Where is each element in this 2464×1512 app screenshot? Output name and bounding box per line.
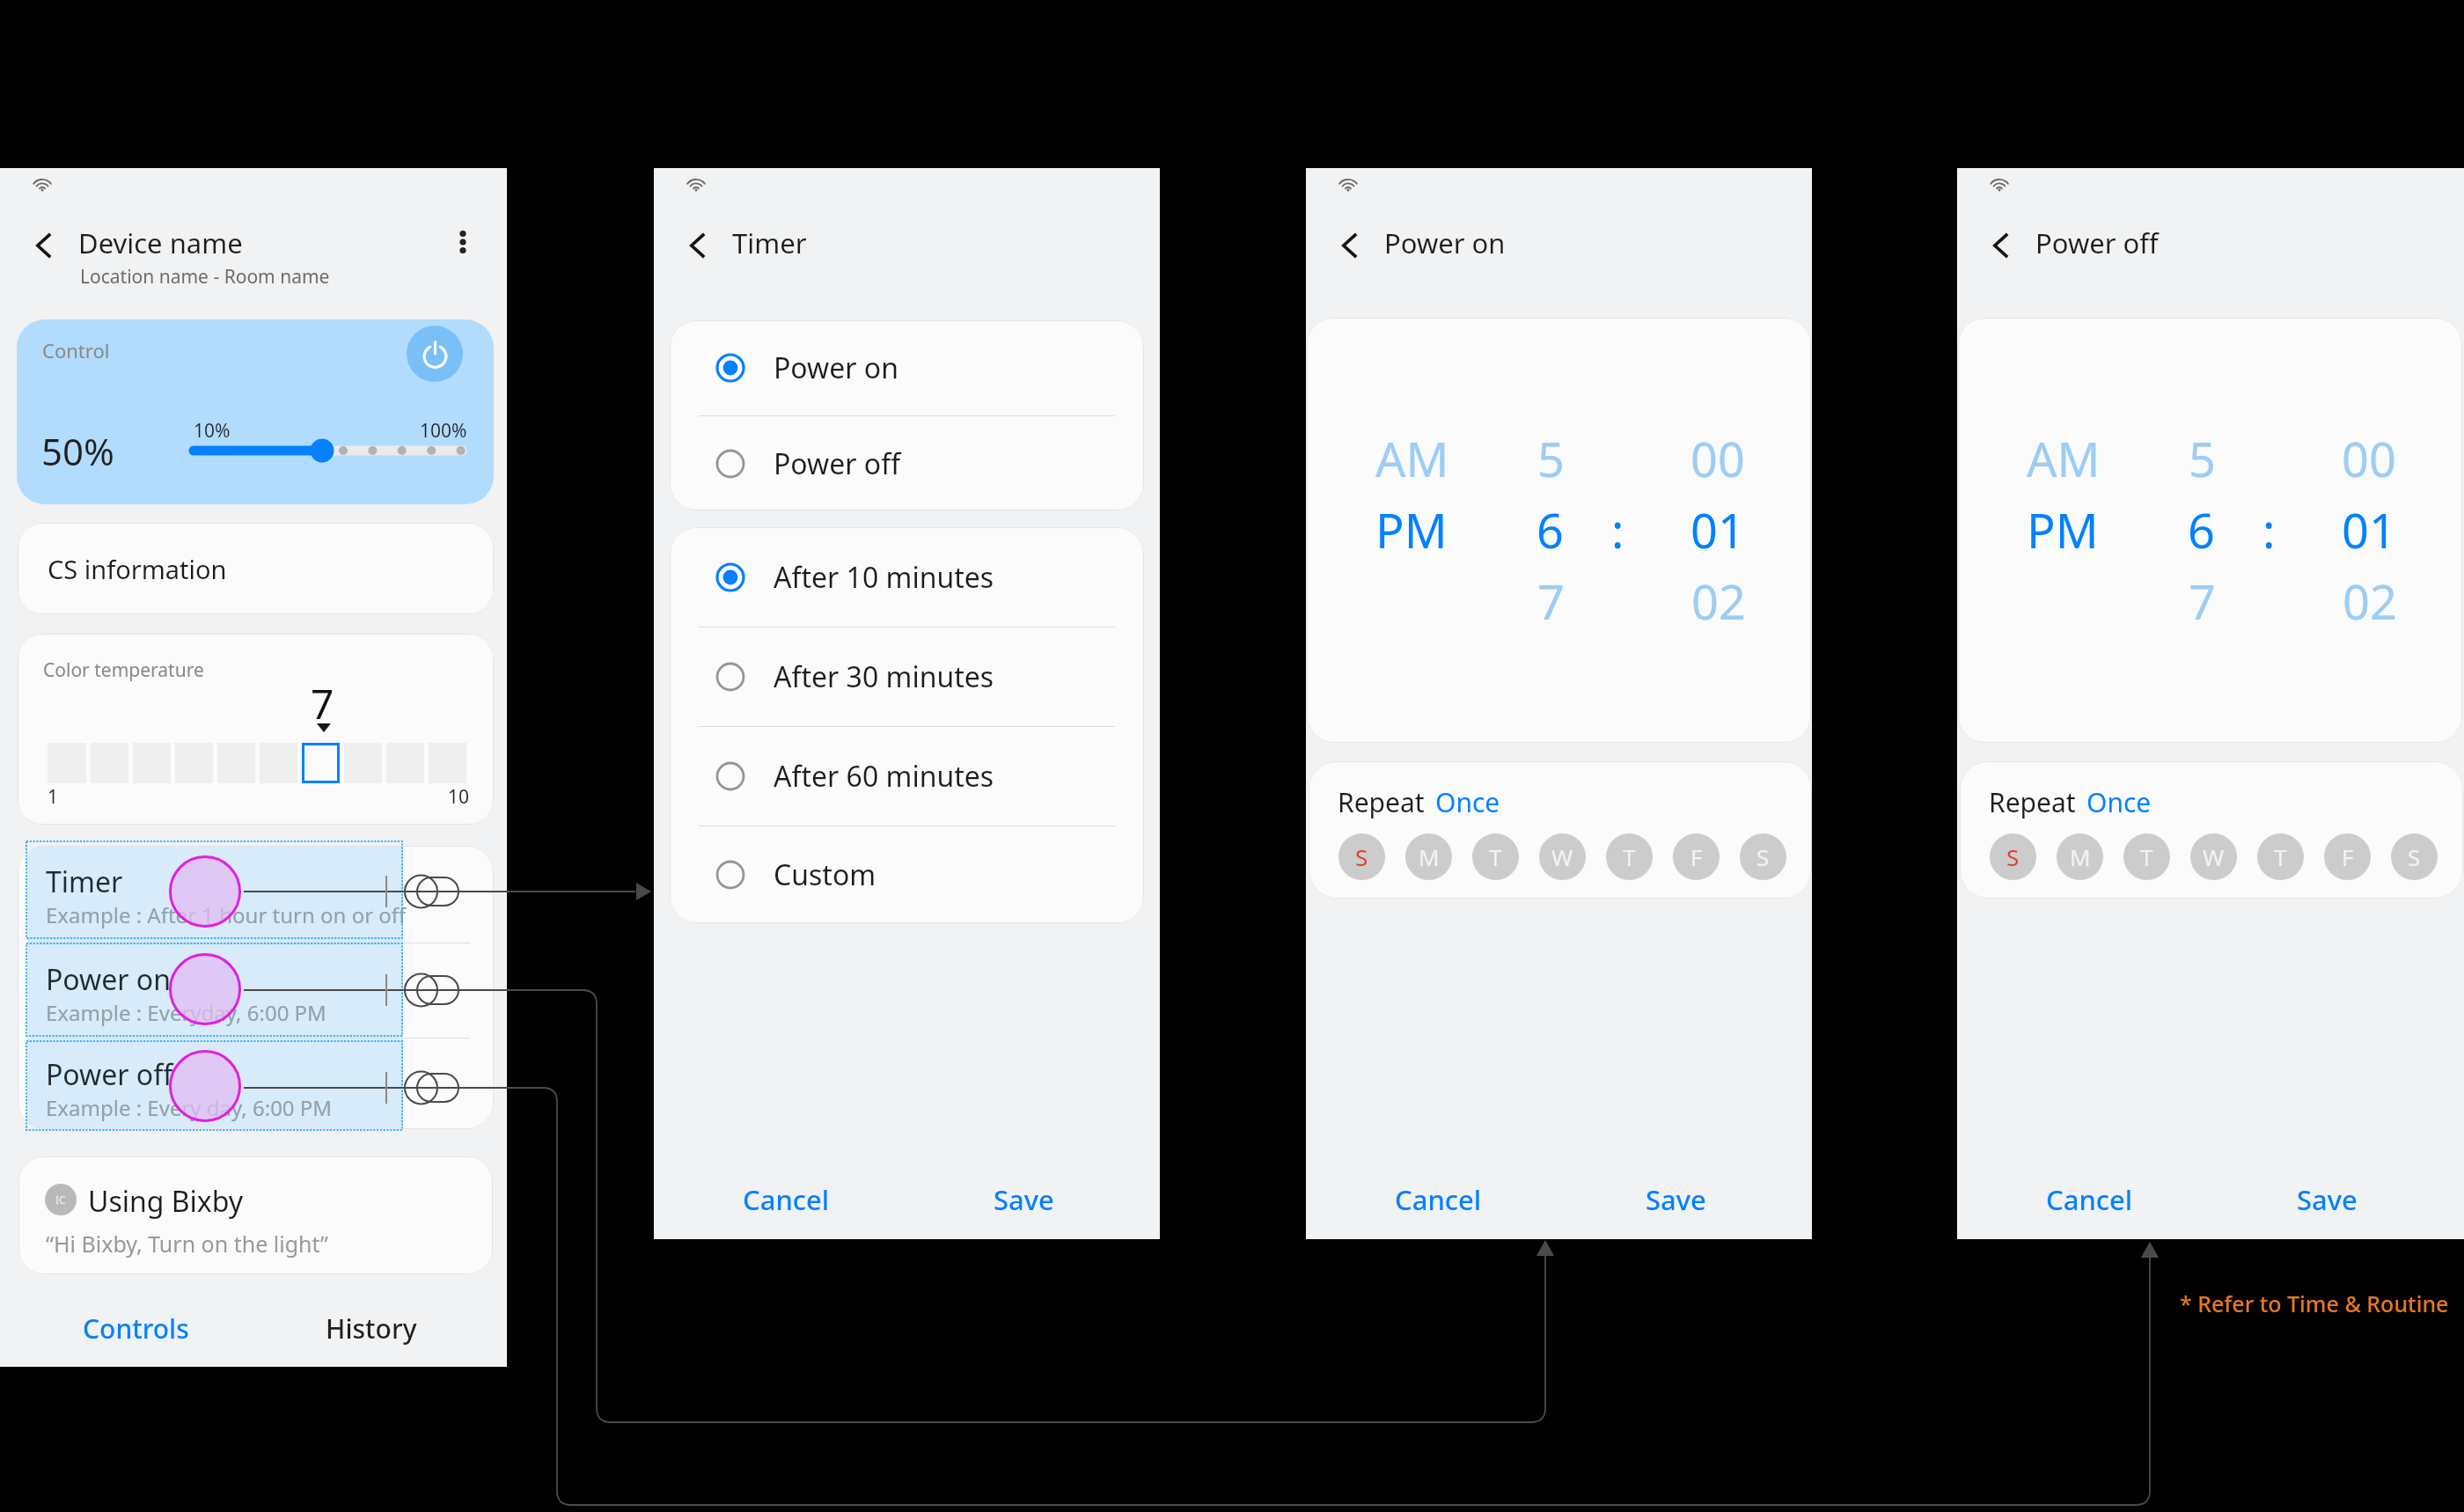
button[interactable]: After 60 minutes	[670, 727, 1144, 826]
staticText: Location name - Room name	[80, 264, 330, 290]
staticText: Cancel	[743, 1181, 830, 1218]
staticText: 10	[448, 784, 470, 810]
staticText: 01	[1690, 497, 1745, 562]
staticText: 1	[48, 784, 59, 810]
button[interactable]: W	[2190, 833, 2237, 880]
staticText: PM	[1375, 497, 1448, 562]
button[interactable]: W	[1539, 833, 1586, 880]
button[interactable]: S	[2391, 833, 2438, 880]
button[interactable]: Timer	[18, 846, 494, 943]
staticText: Save	[2297, 1181, 2358, 1218]
button[interactable]: Custom	[670, 826, 1144, 923]
staticText: Example : Everyday, 6:00 PM	[46, 998, 326, 1027]
staticText: Timer	[732, 224, 807, 261]
button[interactable]: After 30 minutes	[670, 628, 1144, 726]
staticText: Using Bixby	[88, 1182, 244, 1221]
staticText: Save	[994, 1181, 1054, 1218]
button[interactable]: T	[2123, 833, 2170, 880]
staticText: AM	[2027, 426, 2101, 491]
button[interactable]: Power on	[670, 320, 1144, 415]
staticText: 5	[2189, 426, 2216, 491]
staticText: T	[1489, 841, 1502, 872]
button[interactable]: Once	[1435, 784, 1500, 820]
staticText: T	[2140, 841, 2153, 872]
button[interactable]: Back	[1327, 225, 1373, 265]
staticText: Repeat	[1338, 784, 1425, 820]
button[interactable]: CS information	[18, 523, 494, 614]
button[interactable]: Back	[675, 225, 721, 265]
button[interactable]: History	[263, 1288, 479, 1367]
button[interactable]: Power on	[18, 943, 494, 1038]
staticText: Repeat	[1989, 784, 2076, 820]
staticText: Power on	[46, 960, 171, 999]
staticText: M	[1419, 841, 1440, 872]
staticText: AM	[1375, 426, 1449, 491]
button[interactable]: Power	[407, 326, 463, 382]
staticText: Save	[1646, 1181, 1706, 1218]
staticText: S	[2006, 841, 2020, 872]
staticText: Control	[42, 337, 110, 363]
staticText: After 30 minutes	[774, 657, 994, 696]
button[interactable]: IC	[18, 1156, 493, 1274]
button[interactable]	[302, 743, 340, 783]
staticText: Device name	[78, 224, 243, 261]
button[interactable]: Back	[21, 225, 67, 265]
button[interactable]: Save	[1596, 1166, 1755, 1233]
button[interactable]: Control	[17, 319, 494, 504]
button[interactable]: T	[2257, 833, 2304, 880]
staticText: Timer	[46, 862, 123, 901]
button[interactable]: Once	[2086, 784, 2152, 820]
staticText: Once	[2086, 784, 2152, 820]
staticText: 5	[1537, 426, 1565, 491]
staticText: IC	[55, 1193, 66, 1207]
staticText: CS information	[48, 552, 227, 586]
button[interactable]: M	[1405, 833, 1452, 880]
staticText: Example : After 1 hour turn on or off	[46, 900, 407, 929]
staticText: Once	[1435, 784, 1500, 820]
button[interactable]: More options	[443, 223, 482, 261]
staticText: Cancel	[1395, 1181, 1482, 1218]
button[interactable]: F	[2324, 833, 2371, 880]
button[interactable]: Controls	[28, 1288, 244, 1367]
button[interactable]: Back	[1978, 225, 2024, 265]
staticText: 7	[311, 676, 334, 731]
staticText: W	[1551, 841, 1573, 872]
button[interactable]: Cancel	[2010, 1166, 2168, 1233]
button[interactable]: Cancel	[1359, 1166, 1517, 1233]
staticText: History	[326, 1310, 417, 1347]
button[interactable]: Power off	[670, 416, 1144, 510]
staticText: :	[1611, 497, 1624, 562]
button[interactable]: T	[1472, 833, 1519, 880]
staticText: 00	[1690, 426, 1745, 491]
button[interactable]: S	[1338, 833, 1385, 880]
staticText: After 60 minutes	[774, 757, 994, 796]
staticText: S	[1756, 841, 1770, 872]
staticText: Cancel	[2046, 1181, 2133, 1218]
button[interactable]: S	[1990, 833, 2036, 880]
staticText: Controls	[83, 1310, 189, 1347]
button[interactable]: M	[2057, 833, 2103, 880]
staticText: S	[1355, 841, 1368, 872]
button[interactable]: After 10 minutes	[670, 527, 1144, 627]
staticText: S	[2408, 841, 2421, 872]
button[interactable]: T	[1606, 833, 1653, 880]
button[interactable]: F	[1673, 833, 1720, 880]
button[interactable]: Power off	[18, 1039, 494, 1129]
staticText: T	[2274, 841, 2287, 872]
button[interactable]: Cancel	[707, 1166, 865, 1233]
staticText: “Hi Bixby, Turn on the light”	[46, 1229, 328, 1259]
button[interactable]: S	[1740, 833, 1786, 880]
staticText: Power off	[2035, 224, 2159, 261]
staticText: 100%	[420, 418, 467, 444]
button[interactable]: Save	[2248, 1166, 2406, 1233]
button[interactable]: Save	[944, 1166, 1103, 1233]
